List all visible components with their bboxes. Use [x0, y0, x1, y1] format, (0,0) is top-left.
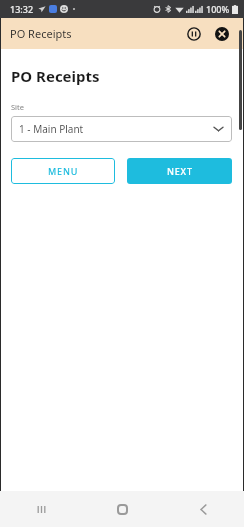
staticText: PO Receipts [10, 26, 72, 41]
button[interactable]: MENU [11, 158, 115, 184]
button[interactable]: Back [188, 494, 218, 524]
button[interactable]: Pause [184, 24, 204, 44]
button[interactable]: Close [212, 24, 232, 44]
staticText: NEXT [167, 165, 193, 177]
button[interactable]: Recents [26, 494, 56, 524]
button[interactable]: NEXT [127, 158, 232, 184]
staticText: 1 - Main Plant [19, 122, 84, 136]
staticText: 13:32 [10, 3, 34, 15]
button[interactable]: Home [107, 494, 137, 524]
staticText: Site [11, 102, 24, 112]
button[interactable]: Site selector [11, 116, 232, 142]
staticText: 100% [206, 3, 230, 15]
staticText: PO Receipts [11, 66, 100, 86]
staticText: MENU [48, 165, 79, 177]
